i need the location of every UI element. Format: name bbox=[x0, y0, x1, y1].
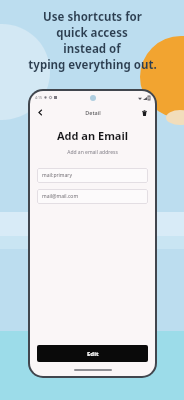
staticText: 4:15 bbox=[35, 95, 42, 100]
staticText: quick access bbox=[56, 25, 128, 41]
staticText: Use shortcuts for bbox=[43, 9, 142, 25]
staticText: mail@mail.com bbox=[42, 193, 79, 200]
staticText: Detail bbox=[85, 109, 101, 116]
button[interactable]: mail@mail.com bbox=[37, 189, 148, 204]
staticText: Add an email address bbox=[30, 149, 155, 156]
staticText: Add an Email bbox=[30, 128, 155, 143]
button[interactable]: Delete bbox=[138, 106, 151, 119]
staticText: mail:primary bbox=[42, 172, 72, 179]
staticText: Edit bbox=[87, 350, 99, 358]
button[interactable]: Back bbox=[34, 106, 47, 119]
button[interactable]: mail:primary bbox=[37, 168, 148, 183]
staticText: typing everything out. bbox=[28, 57, 157, 73]
staticText: instead of bbox=[63, 41, 121, 57]
button[interactable]: Edit bbox=[37, 345, 148, 362]
